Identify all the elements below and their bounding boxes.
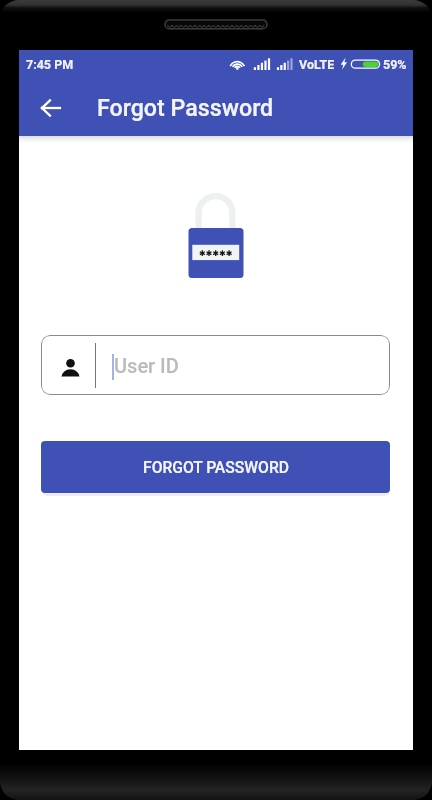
- button[interactable]: Back: [33, 91, 67, 125]
- staticText: FORGOT PASSWORD: [143, 458, 289, 476]
- staticText: User ID: [114, 354, 179, 377]
- staticText: Forgot Password: [97, 94, 274, 121]
- staticText: VoLTE: [299, 57, 335, 72]
- staticText: 7:45 PM: [26, 57, 74, 72]
- staticText: 59%: [383, 57, 407, 72]
- button[interactable]: User ID: [41, 335, 390, 395]
- button[interactable]: FORGOT PASSWORD: [41, 441, 390, 493]
